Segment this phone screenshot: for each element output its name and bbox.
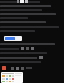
button[interactable] xyxy=(1,72,23,83)
button[interactable]: App icon xyxy=(2,66,6,70)
button[interactable]: Primary action xyxy=(4,36,22,41)
other: Primary action xyxy=(5,37,15,40)
